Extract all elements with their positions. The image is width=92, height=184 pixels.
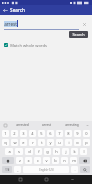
- button[interactable]: Back: [66, 175, 78, 184]
- staticText: 5: [40, 131, 43, 136]
- button[interactable]: f: [35, 148, 42, 155]
- button[interactable]: 2: [11, 130, 18, 137]
- staticText: 7: [58, 131, 61, 136]
- staticText: i: [68, 140, 70, 145]
- button[interactable]: b: [52, 157, 59, 164]
- staticText: x: [27, 158, 30, 163]
- staticText: Search: [10, 7, 25, 13]
- staticText: arresting: [65, 123, 79, 127]
- staticText: arrest: [4, 21, 17, 27]
- staticText: v: [45, 158, 48, 163]
- staticText: !?#: [5, 168, 10, 172]
- staticText: m: [72, 158, 76, 163]
- staticText: arrest: [42, 123, 51, 127]
- button[interactable]: Clipboard: [1, 121, 10, 129]
- button[interactable]: Search: [80, 166, 90, 173]
- staticText: w: [13, 140, 17, 145]
- button[interactable]: Clear text: [81, 21, 88, 28]
- button[interactable]: 5: [38, 130, 45, 137]
- staticText: u: [58, 140, 61, 145]
- button[interactable]: !?#: [2, 166, 12, 173]
- button[interactable]: More suggestions: [84, 121, 91, 129]
- button[interactable]: Search: [69, 31, 88, 38]
- staticText: 0: [85, 131, 88, 136]
- staticText: r: [32, 140, 34, 145]
- button[interactable]: d: [25, 148, 33, 155]
- button[interactable]: o: [74, 139, 81, 146]
- button[interactable]: y: [47, 139, 54, 146]
- staticText: z: [19, 158, 21, 163]
- staticText: y: [49, 140, 52, 145]
- button[interactable]: s: [15, 148, 23, 155]
- staticText: 4: [31, 131, 34, 136]
- button[interactable]: a: [5, 148, 13, 155]
- button[interactable]: 3: [20, 130, 27, 137]
- button[interactable]: l: [80, 148, 87, 155]
- staticText: l: [83, 149, 85, 154]
- staticText: 8: [67, 131, 70, 136]
- button[interactable]: h: [53, 148, 60, 155]
- button[interactable]: 9: [74, 130, 81, 137]
- staticText: e: [22, 140, 25, 145]
- button[interactable]: 1: [2, 130, 9, 137]
- button[interactable]: t: [38, 139, 45, 146]
- staticText: a: [8, 149, 11, 154]
- staticText: .: [74, 167, 76, 172]
- button[interactable]: 8: [65, 130, 72, 137]
- button[interactable]: Home: [40, 175, 52, 184]
- staticText: k: [73, 149, 76, 154]
- staticText: d: [28, 149, 31, 154]
- button[interactable]: Back: [0, 5, 10, 15]
- staticText: Match whole words: [10, 43, 47, 48]
- button[interactable]: r: [29, 139, 36, 146]
- button[interactable]: arrest: [4, 19, 88, 30]
- staticText: 3: [22, 131, 25, 136]
- button[interactable]: j: [62, 148, 69, 155]
- button[interactable]: 4: [29, 130, 36, 137]
- staticText: c: [37, 158, 39, 163]
- button[interactable]: 6: [47, 130, 54, 137]
- button[interactable]: ,: [14, 166, 21, 173]
- button[interactable]: arrested: [10, 121, 34, 129]
- staticText: f: [38, 149, 40, 154]
- staticText: b: [54, 158, 57, 163]
- button[interactable]: arresting: [59, 121, 84, 129]
- button[interactable]: Match whole words: [4, 41, 88, 49]
- staticText: ,: [17, 167, 19, 172]
- button[interactable]: q: [2, 139, 9, 146]
- staticText: English (US): [39, 168, 54, 172]
- staticText: p: [85, 140, 88, 145]
- button[interactable]: i: [65, 139, 72, 146]
- button[interactable]: Recents: [14, 175, 26, 184]
- staticText: h: [55, 149, 58, 154]
- button[interactable]: 7: [56, 130, 63, 137]
- button[interactable]: Shift: [2, 157, 14, 164]
- staticText: j: [65, 149, 67, 154]
- button[interactable]: 0: [83, 130, 90, 137]
- button[interactable]: g: [44, 148, 51, 155]
- button[interactable]: u: [56, 139, 63, 146]
- button[interactable]: n: [61, 157, 68, 164]
- button[interactable]: z: [16, 157, 23, 164]
- staticText: 2: [13, 131, 16, 136]
- button[interactable]: e: [20, 139, 27, 146]
- staticText: 6: [49, 131, 52, 136]
- button[interactable]: m: [70, 157, 77, 164]
- button[interactable]: arrest: [34, 121, 59, 129]
- staticText: arrested: [16, 123, 29, 127]
- staticText: Search: [72, 32, 85, 37]
- button[interactable]: w: [11, 139, 18, 146]
- button[interactable]: k: [71, 148, 78, 155]
- staticText: q: [4, 140, 7, 145]
- staticText: o: [76, 140, 79, 145]
- staticText: s: [18, 149, 20, 154]
- button[interactable]: Backspace: [79, 157, 90, 164]
- button[interactable]: c: [34, 157, 41, 164]
- button[interactable]: English (US): [23, 166, 69, 173]
- staticText: g: [46, 149, 49, 154]
- button[interactable]: p: [83, 139, 90, 146]
- button[interactable]: v: [43, 157, 50, 164]
- staticText: n: [63, 158, 66, 163]
- button[interactable]: x: [25, 157, 32, 164]
